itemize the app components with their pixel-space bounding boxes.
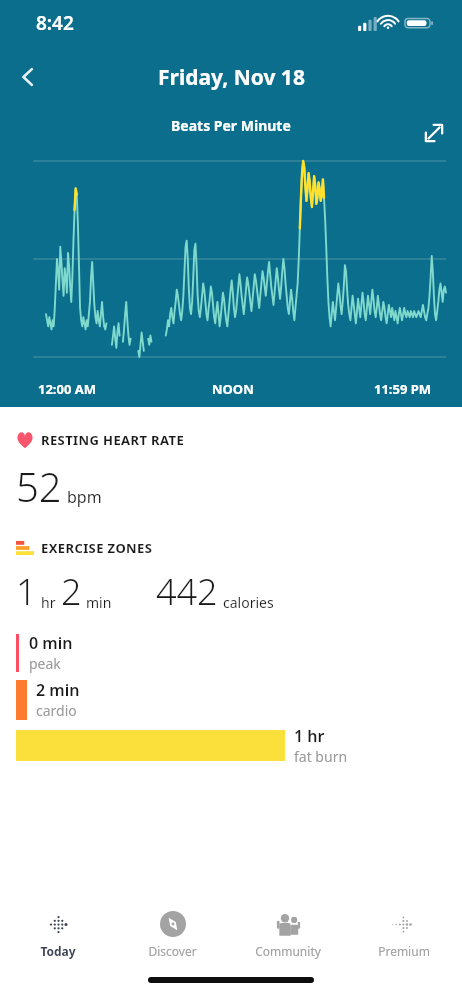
staticText: calories: [223, 593, 274, 612]
staticText: Community: [255, 943, 321, 959]
staticText: 0 min: [29, 632, 73, 654]
staticText: 1: [16, 567, 37, 616]
staticText: Friday, Nov 18: [158, 63, 305, 92]
button[interactable]: RESTING HEART RATE: [0, 407, 462, 513]
staticText: Discover: [148, 943, 197, 959]
staticText: fat burn: [294, 747, 348, 766]
button[interactable]: Discover: [115, 899, 230, 969]
staticText: EXERCISE ZONES: [41, 539, 153, 557]
staticText: 12:00 AM: [38, 380, 97, 398]
button[interactable]: Today: [0, 899, 115, 969]
staticText: 442: [156, 567, 218, 616]
staticText: Today: [40, 943, 76, 959]
staticText: NOON: [212, 380, 254, 398]
staticText: 52: [16, 459, 62, 513]
staticText: RESTING HEART RATE: [41, 431, 185, 449]
staticText: Premium: [378, 943, 430, 959]
staticText: cardio: [36, 701, 77, 720]
staticText: 8:42: [36, 10, 74, 36]
staticText: 1 hr: [294, 725, 325, 747]
staticText: 2 min: [36, 679, 80, 701]
button[interactable]: Premium: [346, 899, 462, 969]
staticText: peak: [29, 654, 61, 673]
staticText: 2: [61, 567, 82, 616]
button[interactable]: Community: [230, 899, 346, 969]
button[interactable]: EXERCISE ZONES: [0, 539, 462, 766]
button[interactable]: Expand chart: [414, 116, 454, 150]
staticText: min: [86, 593, 112, 612]
staticText: hr: [41, 593, 56, 612]
staticText: bpm: [67, 486, 102, 508]
staticText: Beats Per Minute: [171, 116, 291, 135]
staticText: 11:59 PM: [374, 380, 432, 398]
button[interactable]: Back: [6, 55, 50, 99]
